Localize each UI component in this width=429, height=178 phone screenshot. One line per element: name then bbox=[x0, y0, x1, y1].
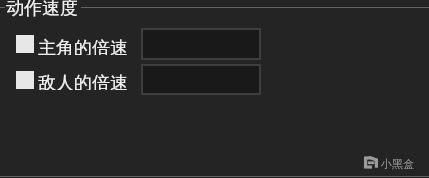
staticText: 主角的倍速 bbox=[38, 37, 128, 55]
staticText: 敌人的倍速 bbox=[38, 72, 128, 90]
staticText: 动作速度 bbox=[6, 0, 78, 20]
button[interactable]: 主角的倍速 bbox=[16, 35, 128, 53]
button[interactable]: 敌人的倍速 输入框 bbox=[141, 64, 261, 95]
button[interactable]: 主角的倍速 输入框 bbox=[141, 28, 261, 60]
other: 小黑盒 bbox=[363, 156, 379, 169]
staticText: 小黑盒 bbox=[381, 157, 414, 171]
button[interactable]: 敌人的倍速 bbox=[16, 71, 128, 89]
